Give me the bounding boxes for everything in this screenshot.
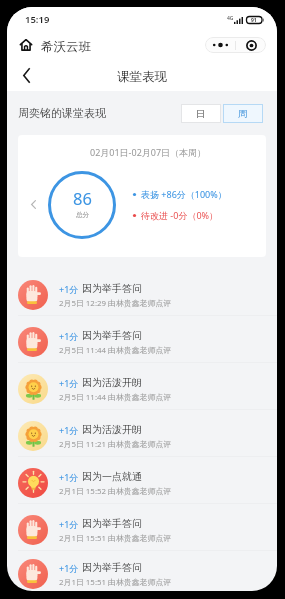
button[interactable]: 周 <box>223 104 263 123</box>
button[interactable]: 日 <box>181 104 221 123</box>
staticText: 2月1日 15:51 由林贵鑫老师点评 <box>59 533 172 544</box>
button[interactable]: +1分 <box>7 551 277 591</box>
staticText: 因为举手答问 <box>82 517 142 530</box>
button[interactable]: Close <box>236 37 266 53</box>
staticText: 因为举手答问 <box>82 329 142 342</box>
button[interactable]: Menu <box>205 37 235 53</box>
staticText: +1分 <box>59 518 79 530</box>
staticText: 表扬 +86分（100%） <box>141 188 227 200</box>
staticText: 2月5日 11:21 由林贵鑫老师点评 <box>59 439 172 450</box>
staticText: 因为活泼开朗 <box>82 423 142 436</box>
button[interactable]: +1分 <box>7 457 277 504</box>
staticText: 2月1日 15:52 由林贵鑫老师点评 <box>59 486 172 497</box>
staticText: 因为活泼开朗 <box>82 376 142 389</box>
staticText: 因为一点就通 <box>82 470 142 483</box>
other: Home <box>20 39 32 51</box>
staticText: 4G <box>227 15 234 22</box>
staticText: +1分 <box>59 283 79 295</box>
staticText: +1分 <box>59 562 79 574</box>
staticText: 2月5日 11:44 由林贵鑫老师点评 <box>59 345 172 356</box>
button[interactable]: +1分 <box>7 410 277 457</box>
staticText: 2月1日 15:51 由林贵鑫老师点评 <box>59 577 172 588</box>
staticText: 周奕铭的课堂表现 <box>18 106 106 120</box>
staticText: 课堂表现 <box>117 69 167 85</box>
staticText: +1分 <box>59 330 79 342</box>
button[interactable]: +1分 <box>7 316 277 363</box>
staticText: 因为举手答问 <box>82 282 142 295</box>
staticText: 15:19 <box>25 13 50 26</box>
button[interactable]: Previous week <box>24 195 42 213</box>
button[interactable]: +1分 <box>7 269 277 316</box>
button[interactable]: +1分 <box>7 363 277 410</box>
staticText: 希沃云班 <box>41 39 91 55</box>
staticText: 待改进 -0分（0%） <box>141 209 219 221</box>
staticText: 2月5日 12:29 由林贵鑫老师点评 <box>59 298 172 309</box>
staticText: 86 <box>73 187 92 209</box>
staticText: 总分 <box>76 211 90 219</box>
staticText: +1分 <box>59 471 79 483</box>
staticText: 2月5日 11:44 由林贵鑫老师点评 <box>59 392 172 403</box>
staticText: 02月01日-02月07日（本周） <box>90 146 207 158</box>
staticText: 日 <box>196 108 206 120</box>
staticText: 周 <box>238 108 248 120</box>
staticText: 因为举手答问 <box>82 561 142 574</box>
staticText: +1分 <box>59 377 79 389</box>
staticText: 91 <box>251 17 257 24</box>
button[interactable]: Back <box>7 57 41 91</box>
staticText: +1分 <box>59 424 79 436</box>
button[interactable]: +1分 <box>7 504 277 551</box>
